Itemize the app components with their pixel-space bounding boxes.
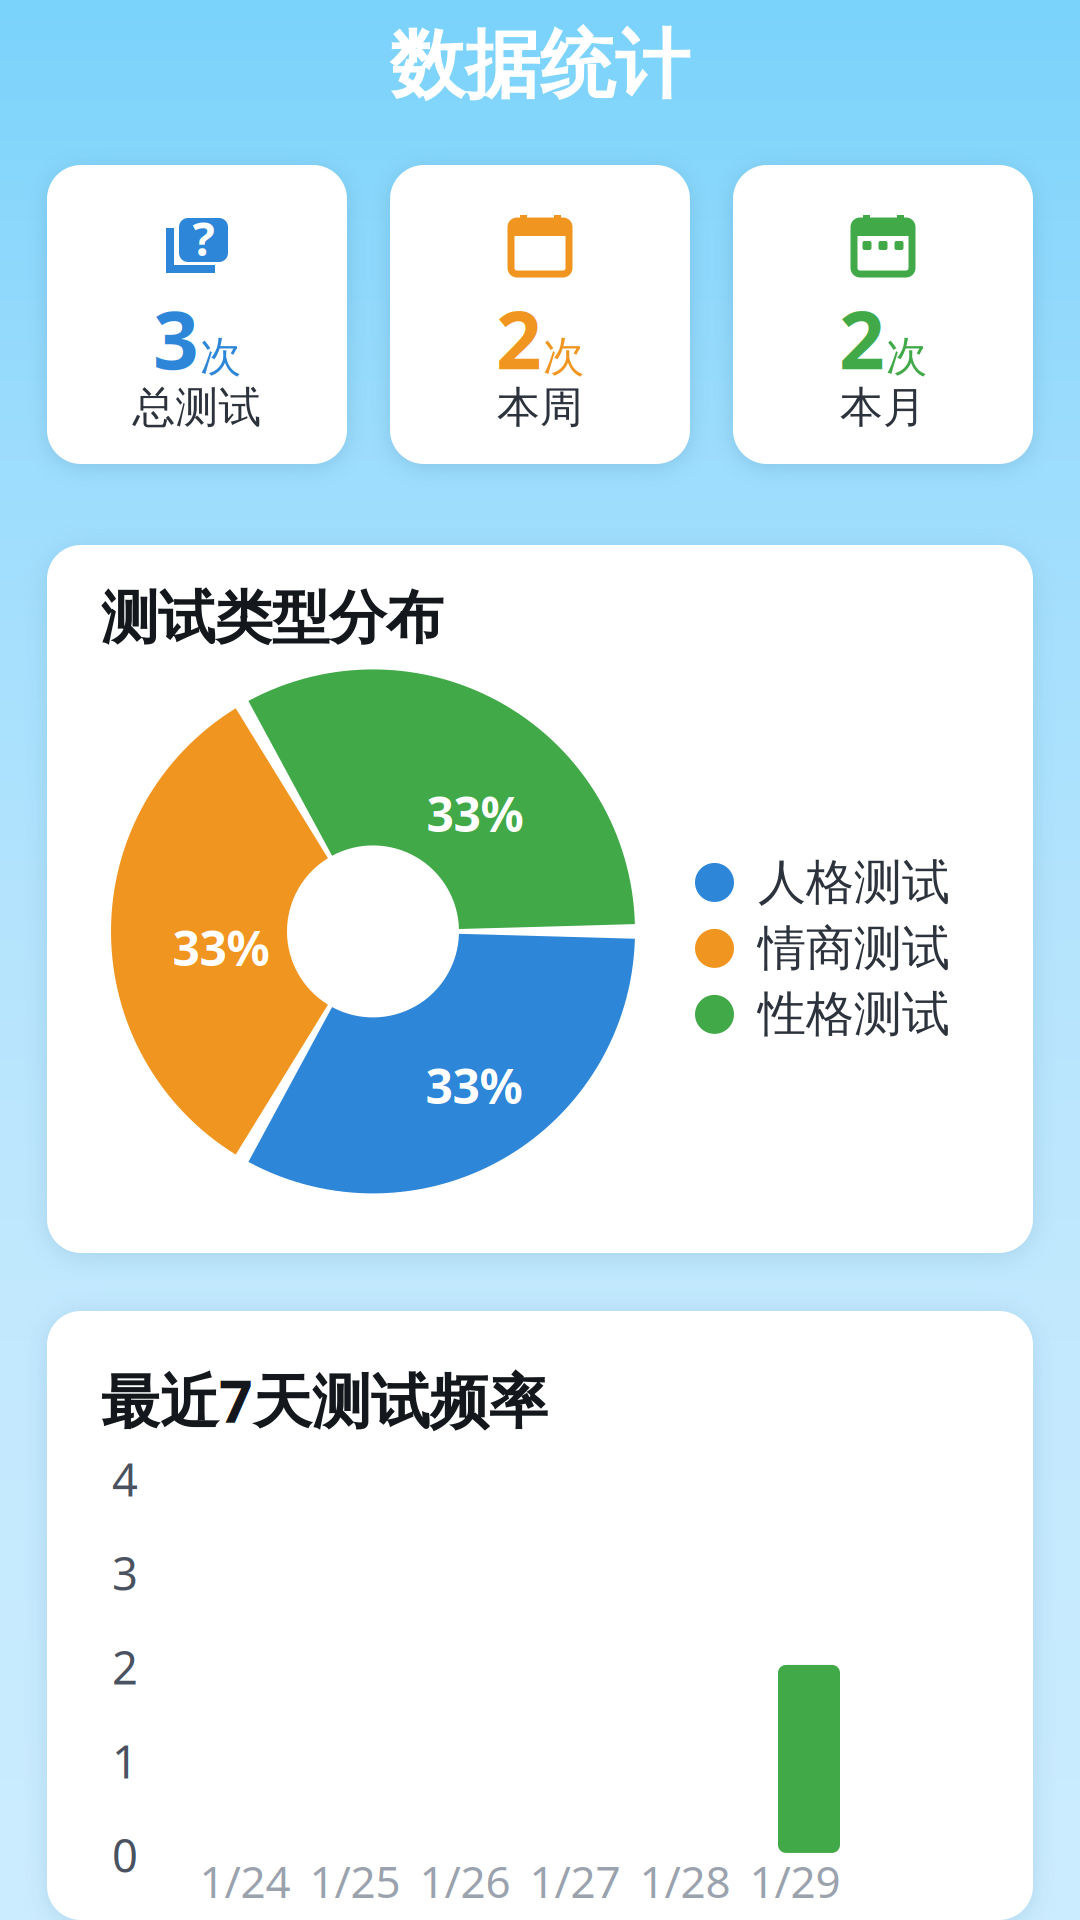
staticText: 1/24 bbox=[199, 1852, 290, 1910]
staticText: 33% bbox=[425, 1053, 522, 1117]
staticText: 4 bbox=[112, 1449, 138, 1509]
button[interactable]: 本月 2 次 bbox=[733, 165, 1033, 464]
staticText: 2 bbox=[839, 285, 885, 391]
staticText: 33% bbox=[426, 781, 523, 845]
staticText: 1 bbox=[112, 1731, 138, 1791]
staticText: 1/26 bbox=[419, 1852, 510, 1910]
staticText: 2 bbox=[112, 1637, 138, 1697]
staticText: 3 bbox=[153, 285, 199, 391]
staticText: 最近7天测试频率 bbox=[101, 1361, 548, 1439]
staticText: 测试类型分布 bbox=[101, 583, 443, 653]
staticText: 人格测试 bbox=[758, 853, 950, 912]
button[interactable]: 本周 2 次 bbox=[390, 165, 690, 464]
staticText: 次 bbox=[543, 331, 584, 382]
staticText: 2 bbox=[496, 285, 542, 391]
staticText: 33% bbox=[172, 915, 269, 979]
staticText: 本月 bbox=[840, 381, 926, 434]
button[interactable]: 总测试 3 次 bbox=[47, 165, 347, 464]
staticText: 1/28 bbox=[639, 1852, 730, 1910]
staticText: 性格测试 bbox=[758, 985, 950, 1044]
staticText: 3 bbox=[112, 1543, 138, 1603]
staticText: 1/25 bbox=[309, 1852, 400, 1910]
staticText: 次 bbox=[200, 331, 241, 382]
staticText: 数据统计 bbox=[390, 20, 690, 111]
staticText: 情商测试 bbox=[758, 919, 950, 978]
staticText: 1/29 bbox=[749, 1852, 840, 1910]
staticText: 总测试 bbox=[132, 381, 261, 434]
staticText: 次 bbox=[886, 331, 927, 382]
staticText: 1/27 bbox=[529, 1852, 620, 1910]
staticText: 0 bbox=[112, 1825, 138, 1885]
staticText: 本周 bbox=[497, 381, 583, 434]
staticText: ? bbox=[192, 207, 214, 269]
